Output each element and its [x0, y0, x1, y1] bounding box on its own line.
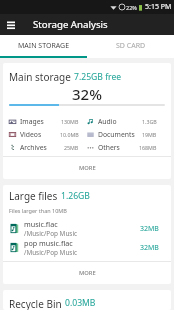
staticText: 32% [9, 84, 165, 104]
staticText: 32MB [140, 224, 159, 234]
staticText: 0.03MB [65, 297, 96, 309]
staticText: Videos [20, 130, 42, 139]
staticText: 10.0MB [60, 131, 79, 138]
staticText: SD CARD [116, 41, 146, 51]
staticText: Others [98, 143, 120, 152]
button[interactable]: Others [87, 141, 165, 154]
button[interactable]: pop music.flac [9, 238, 165, 257]
staticText: Recycle Bin [9, 297, 62, 310]
staticText: 25MB [64, 144, 79, 151]
staticText: Large files [9, 189, 58, 203]
staticText: Main storage [9, 70, 71, 84]
staticText: MAIN STORAGE [18, 41, 70, 51]
staticText: 5:15 PM [145, 2, 172, 12]
staticText: MORE [79, 269, 96, 277]
staticText: Audio [98, 117, 117, 126]
staticText: 7.25GB free [74, 71, 122, 83]
staticText: 130MB [61, 118, 79, 125]
button[interactable]: MORE [3, 157, 171, 179]
staticText: /Music/Pop Music [24, 229, 78, 238]
staticText: pop music.flac [24, 238, 73, 248]
staticText: Storage Analysis [33, 18, 108, 31]
staticText: MORE [79, 164, 96, 172]
button[interactable]: SD CARD [87, 35, 174, 56]
staticText: 168MB [139, 144, 157, 151]
staticText: Documents [98, 130, 135, 139]
staticText: Images [20, 117, 44, 126]
staticText: Archives [20, 143, 47, 152]
button[interactable]: Open navigation menu [0, 14, 22, 35]
button[interactable]: MAIN STORAGE [0, 35, 87, 56]
button[interactable]: MORE [3, 262, 171, 284]
button[interactable]: Archives [9, 141, 87, 154]
button[interactable]: Videos [9, 128, 87, 141]
button[interactable]: Images [9, 115, 87, 128]
staticText: 1.26GB [61, 190, 90, 202]
staticText: 19MB [142, 131, 157, 138]
staticText: Files larger than 10MB [9, 207, 67, 214]
staticText: /Music/Pop Music [24, 248, 78, 257]
button[interactable]: music.flac [9, 219, 165, 238]
button[interactable]: Documents [87, 128, 165, 141]
staticText: 22% [126, 4, 137, 11]
staticText: music.flac [24, 219, 58, 229]
staticText: 32MB [140, 243, 159, 253]
button[interactable]: Audio [87, 115, 165, 128]
staticText: 1.3GB [142, 118, 157, 125]
